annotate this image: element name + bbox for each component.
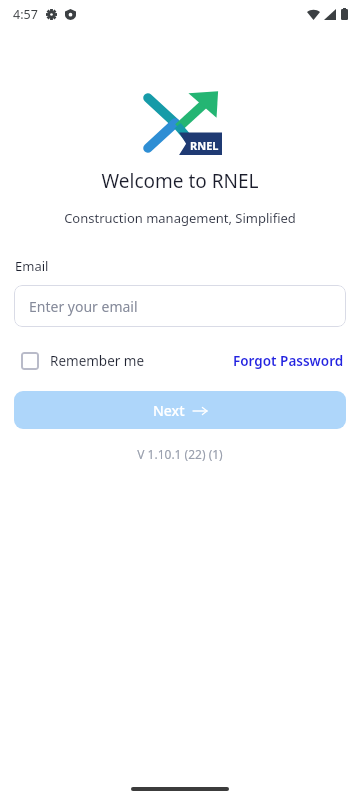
other: Signal: [324, 9, 336, 20]
other: Security: [65, 9, 76, 20]
staticText: Welcome to RNEL: [101, 168, 259, 194]
staticText: Next: [153, 401, 185, 420]
button[interactable]: Enter your email: [14, 285, 346, 327]
button[interactable]: Forgot Password: [231, 349, 346, 373]
staticText: Forgot Password: [233, 352, 344, 370]
staticText: 4:57: [13, 6, 38, 23]
other: Battery: [341, 8, 348, 20]
button[interactable]: Next: [14, 391, 346, 429]
staticText: RNEL: [190, 138, 219, 153]
staticText: Enter your email: [29, 297, 138, 316]
staticText: Email: [15, 257, 49, 275]
other: RNEL logo: [144, 90, 222, 156]
staticText: Remember me: [50, 352, 145, 370]
other: Wi-Fi: [307, 9, 320, 20]
button[interactable]: Remember me: [14, 352, 149, 370]
staticText: Construction management, Simplified: [64, 209, 296, 227]
other: Settings: [46, 9, 57, 20]
staticText: V 1.10.1 (22) (1): [137, 446, 223, 462]
